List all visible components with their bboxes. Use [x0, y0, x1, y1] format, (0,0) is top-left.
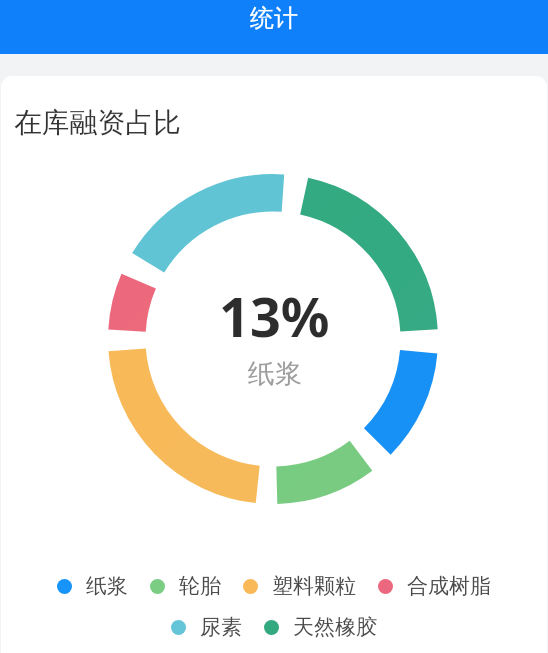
- button[interactable]: 合成树脂: [378, 573, 491, 599]
- button[interactable]: 纸浆: [57, 573, 128, 599]
- staticText: 纸浆: [248, 357, 302, 391]
- button[interactable]: 尿素: [171, 614, 242, 640]
- staticText: 轮胎: [179, 573, 221, 599]
- staticText: 合成树脂: [407, 573, 491, 599]
- button[interactable]: 轮胎: [150, 573, 221, 599]
- staticText: 塑料颗粒: [272, 573, 356, 599]
- staticText: 天然橡胶: [293, 614, 377, 640]
- staticText: 尿素: [200, 614, 242, 640]
- button[interactable]: 统计: [0, 0, 548, 54]
- staticText: 13%: [219, 279, 330, 353]
- staticText: 纸浆: [86, 573, 128, 599]
- staticText: 统计: [250, 3, 298, 33]
- button[interactable]: 塑料颗粒: [243, 573, 356, 599]
- staticText: 在库融资占比: [14, 105, 181, 140]
- button[interactable]: 天然橡胶: [264, 614, 377, 640]
